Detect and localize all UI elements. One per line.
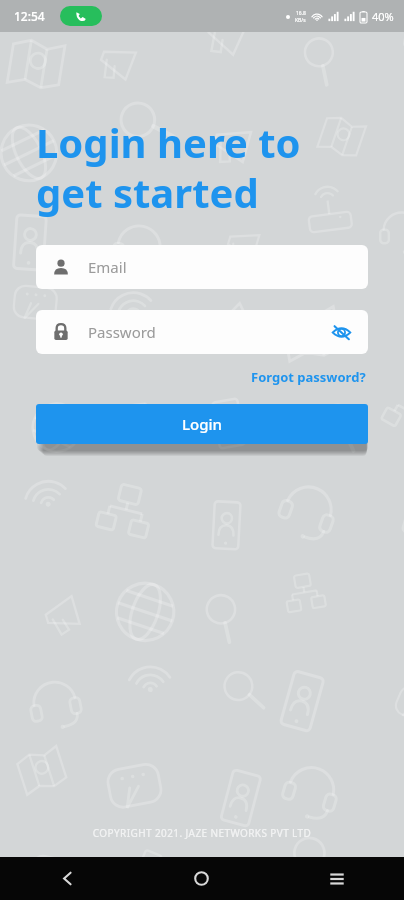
button[interactable]: Home <box>134 857 269 900</box>
staticText: Login <box>182 414 222 434</box>
button[interactable]: Login <box>36 404 368 444</box>
staticText: 40% <box>372 9 394 24</box>
staticText: KB/s <box>295 17 306 24</box>
staticText: Email <box>88 257 127 277</box>
staticText: Forgot password? <box>251 368 366 386</box>
button[interactable]: Forgot password? <box>249 366 368 388</box>
staticText: Password <box>88 322 328 342</box>
staticText: COPYRIGHT 2021. JAZE NETWORKS PVT LTD <box>0 826 404 840</box>
staticText: 12:54 <box>14 8 45 24</box>
button[interactable]: Show password <box>328 319 354 345</box>
button[interactable]: Recent apps <box>269 857 404 900</box>
button[interactable]: Password <box>36 310 368 354</box>
button[interactable]: Email <box>36 245 368 289</box>
staticText: 16.8 <box>296 10 306 17</box>
staticText: Login here to get started <box>36 115 301 220</box>
button[interactable]: Back <box>0 857 134 900</box>
